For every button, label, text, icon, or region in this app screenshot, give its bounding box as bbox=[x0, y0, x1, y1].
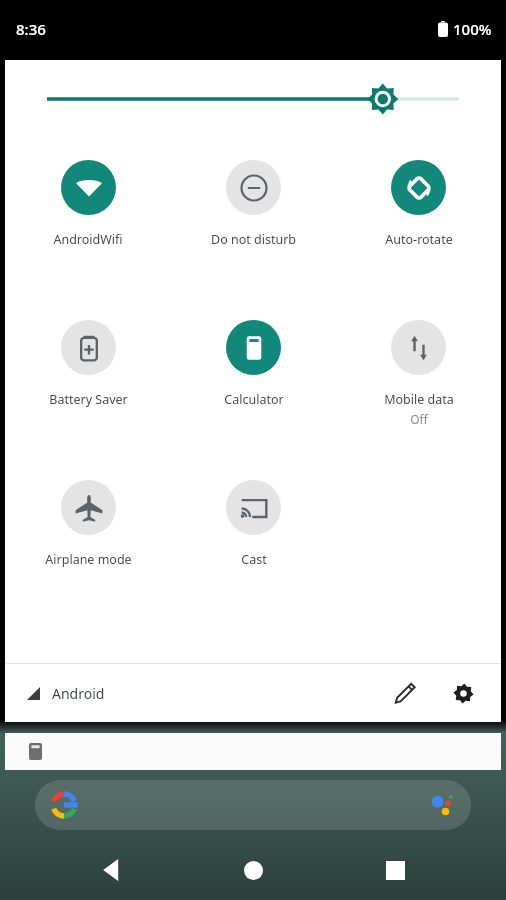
button[interactable]: Android bbox=[27, 684, 105, 703]
staticText: Airplane mode bbox=[45, 551, 132, 568]
staticText: Auto-rotate bbox=[385, 231, 453, 248]
button[interactable] bbox=[5, 733, 501, 770]
button[interactable]: Cast bbox=[171, 458, 336, 568]
button[interactable]: Settings bbox=[439, 669, 487, 717]
button[interactable]: Recents bbox=[365, 840, 425, 900]
staticText: Calculator bbox=[224, 391, 284, 408]
staticText: 8:36 bbox=[16, 19, 46, 39]
button[interactable]: Battery Saver bbox=[5, 298, 171, 408]
staticText: AndroidWifi bbox=[53, 231, 123, 248]
button[interactable]: Mobile data bbox=[336, 298, 501, 427]
staticText: Battery Saver bbox=[49, 391, 128, 408]
button[interactable]: Auto-rotate bbox=[336, 138, 501, 248]
staticText: Mobile data bbox=[384, 391, 454, 408]
button[interactable]: Brightness bbox=[5, 60, 501, 138]
button[interactable]: Home bbox=[223, 840, 283, 900]
button[interactable]: Back bbox=[82, 840, 142, 900]
staticText: 100% bbox=[453, 19, 492, 39]
staticText: Android bbox=[52, 684, 105, 703]
button[interactable]: Airplane mode bbox=[5, 458, 171, 568]
button[interactable]: Do not disturb bbox=[171, 138, 336, 248]
button[interactable]: AndroidWifi bbox=[5, 138, 171, 248]
button[interactable]: Edit bbox=[381, 669, 429, 717]
staticText: Do not disturb bbox=[211, 231, 296, 248]
button[interactable] bbox=[35, 780, 471, 830]
staticText: Off bbox=[410, 411, 428, 427]
staticText: Cast bbox=[241, 551, 267, 568]
button[interactable]: Calculator bbox=[171, 298, 336, 408]
